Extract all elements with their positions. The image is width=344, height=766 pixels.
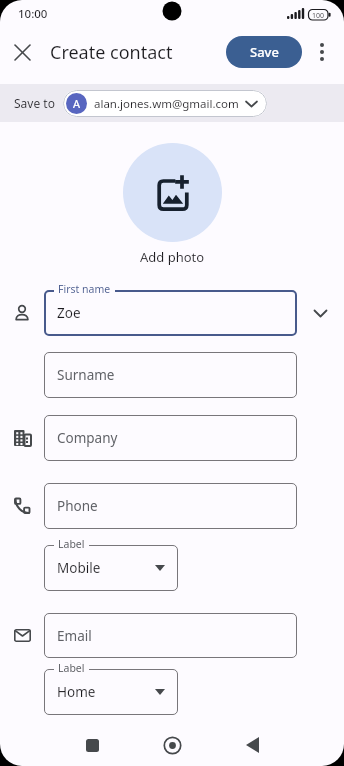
button[interactable] (297, 290, 344, 336)
button[interactable] (302, 32, 342, 72)
staticText: 10:00 (18, 6, 48, 22)
button[interactable]: Phone (44, 483, 297, 529)
button[interactable] (238, 731, 266, 759)
staticText: Label (58, 537, 85, 551)
button[interactable]: Zoe (44, 290, 297, 336)
button[interactable]: Company (44, 415, 297, 461)
staticText: Save (250, 43, 279, 61)
button[interactable]: Email (44, 613, 297, 658)
button[interactable] (158, 731, 186, 759)
button[interactable] (78, 731, 106, 759)
button[interactable] (123, 143, 222, 242)
staticText: Email (57, 627, 92, 645)
staticText: Mobile (57, 559, 101, 577)
staticText: First name (58, 282, 111, 296)
staticText: Label (58, 661, 85, 675)
staticText: A (73, 96, 81, 111)
button[interactable]: Home (44, 669, 178, 715)
staticText: 100 (312, 11, 325, 21)
button[interactable]: Save (226, 36, 302, 68)
staticText: Create contact (50, 40, 173, 65)
staticText: Zoe (57, 304, 81, 322)
staticText: Surname (57, 366, 115, 384)
button[interactable]: Mobile (44, 545, 178, 591)
staticText: alan.jones.wm@gmail.com (94, 96, 239, 112)
button[interactable]: Surname (44, 352, 297, 398)
staticText: Add photo (140, 248, 205, 266)
staticText: Company (57, 429, 118, 447)
staticText: Phone (57, 497, 98, 515)
staticText: Home (57, 683, 96, 701)
staticText: Save to (14, 95, 55, 111)
button[interactable] (0, 30, 44, 74)
button[interactable]: A (63, 90, 267, 117)
